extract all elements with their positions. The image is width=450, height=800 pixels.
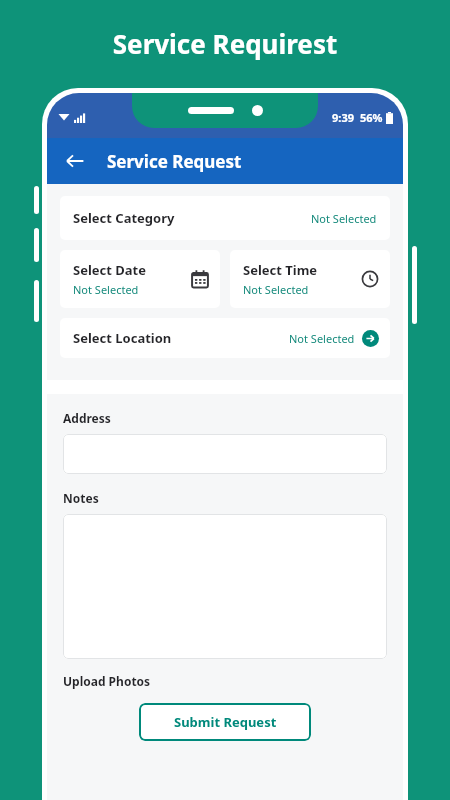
other: Pick date bbox=[191, 270, 209, 288]
staticText: Select Time bbox=[243, 261, 318, 279]
button[interactable]: Select location bbox=[362, 330, 379, 347]
staticText: Service Requirest bbox=[0, 26, 450, 61]
staticText: Upload Photos bbox=[63, 673, 151, 689]
staticText: Select Date bbox=[73, 261, 146, 279]
staticText: Select Location bbox=[73, 329, 289, 347]
staticText: Submit Request bbox=[174, 713, 277, 731]
staticText: Not Selected bbox=[289, 331, 355, 346]
button[interactable]: Select Category bbox=[60, 196, 390, 240]
staticText: 56% bbox=[360, 110, 383, 125]
other: Pick time bbox=[361, 270, 379, 288]
staticText: Not Selected bbox=[311, 211, 377, 226]
staticText: Select Category bbox=[73, 209, 311, 227]
staticText: 9:39 bbox=[332, 110, 354, 125]
button[interactable]: Submit Request bbox=[139, 703, 311, 741]
button[interactable]: Notes field bbox=[63, 514, 387, 659]
staticText: Address bbox=[63, 410, 111, 426]
button[interactable]: Select Time bbox=[230, 250, 390, 308]
staticText: Not Selected bbox=[73, 282, 139, 297]
button[interactable]: Address field bbox=[63, 434, 387, 474]
staticText: Not Selected bbox=[243, 282, 309, 297]
button[interactable]: Select Date bbox=[60, 250, 220, 308]
staticText: Notes bbox=[63, 490, 99, 506]
button[interactable]: Back bbox=[56, 142, 94, 180]
staticText: Service Request bbox=[107, 150, 242, 173]
button[interactable]: Select Location bbox=[60, 318, 390, 358]
